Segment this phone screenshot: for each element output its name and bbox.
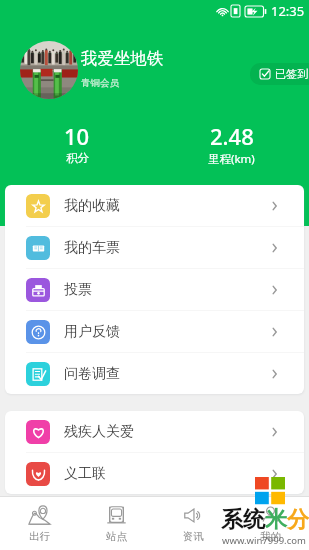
button[interactable]: 10 (0, 121, 154, 165)
staticText: 残疾人关爱 (64, 423, 134, 441)
staticText: www.win7999.com (222, 534, 306, 547)
staticText: 出行 (29, 530, 50, 543)
staticText: 站点 (106, 530, 127, 543)
button[interactable]: 投票 (5, 269, 304, 310)
staticText: 我的收藏 (64, 197, 120, 215)
staticText: 系 (221, 506, 243, 534)
staticText: 投票 (64, 281, 92, 299)
staticText: 义工联 (64, 465, 106, 483)
button[interactable]: 我的 (232, 497, 309, 550)
button[interactable]: 2.48 (154, 121, 309, 167)
staticText: 分 (287, 506, 309, 534)
staticText: 统 (243, 506, 265, 534)
button[interactable]: 站点 (78, 497, 155, 550)
button[interactable]: 资讯 (155, 497, 232, 550)
button[interactable]: 我的收藏 (5, 185, 304, 226)
button[interactable]: 残疾人关爱 (5, 411, 304, 452)
staticText: 我的车票 (64, 239, 120, 257)
staticText: 问卷调查 (64, 365, 120, 383)
button[interactable]: 问卷调查 (5, 353, 304, 394)
button[interactable]: 用户反馈 (5, 311, 304, 352)
staticText: 用户反馈 (64, 323, 120, 341)
staticText: 12:35 (271, 2, 305, 20)
button[interactable]: 已签到 (250, 63, 309, 85)
staticText: 资讯 (183, 530, 204, 543)
button[interactable]: 义工联 (5, 453, 304, 494)
staticText: 积分 (66, 151, 89, 165)
staticText: 里程(km) (208, 151, 255, 167)
staticText: 我爱坐地铁 (81, 48, 164, 69)
staticText: 已签到 (275, 67, 308, 81)
button[interactable]: 出行 (0, 497, 78, 550)
staticText: 米 (265, 506, 287, 534)
staticText: 青铜会员 (81, 77, 119, 89)
button[interactable]: 我的车票 (5, 227, 304, 268)
staticText: 2.48 (210, 121, 254, 151)
staticText: 10 (64, 121, 90, 151)
staticText: 我的 (260, 530, 281, 543)
